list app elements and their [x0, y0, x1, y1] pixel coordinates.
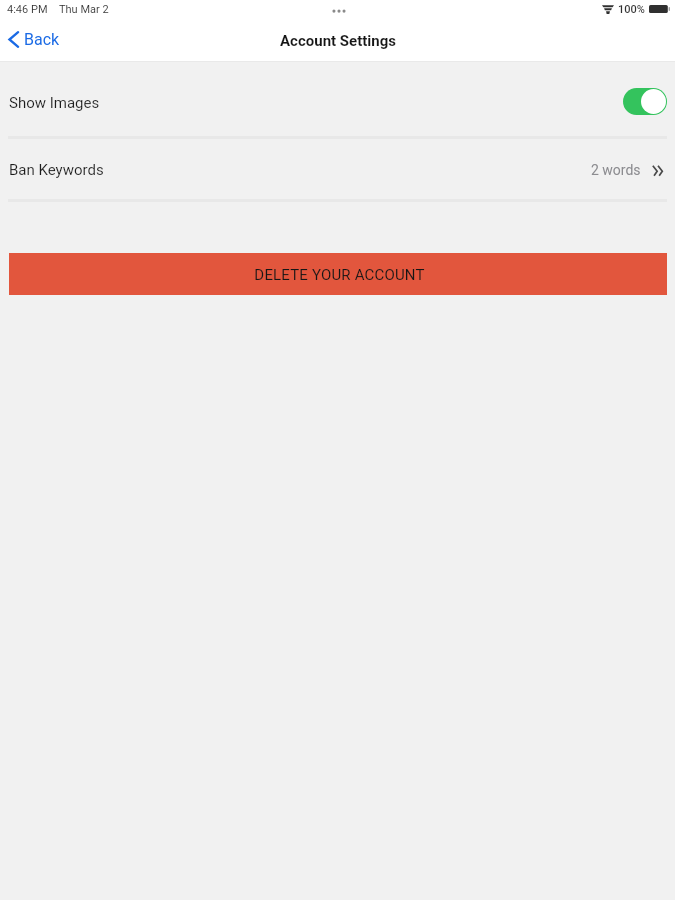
button[interactable]: Show Images toggle [623, 88, 667, 115]
staticText: Back [24, 30, 60, 49]
staticText: Account Settings [280, 32, 396, 50]
other: Edit ban keywords [652, 165, 664, 176]
staticText: Thu Mar 2 [59, 3, 109, 16]
button[interactable]: Back [0, 25, 72, 54]
button[interactable]: DELETE YOUR ACCOUNT [9, 253, 667, 295]
button[interactable]: Show Images [0, 73, 675, 136]
staticText: 100% [618, 3, 645, 16]
staticText: DELETE YOUR ACCOUNT [254, 266, 425, 284]
button[interactable]: Ban Keywords [0, 139, 675, 199]
staticText: 4:46 PM [7, 3, 48, 16]
staticText: 2 words [591, 162, 641, 178]
staticText: Show Images [9, 94, 100, 112]
staticText: Ban Keywords [9, 161, 104, 179]
